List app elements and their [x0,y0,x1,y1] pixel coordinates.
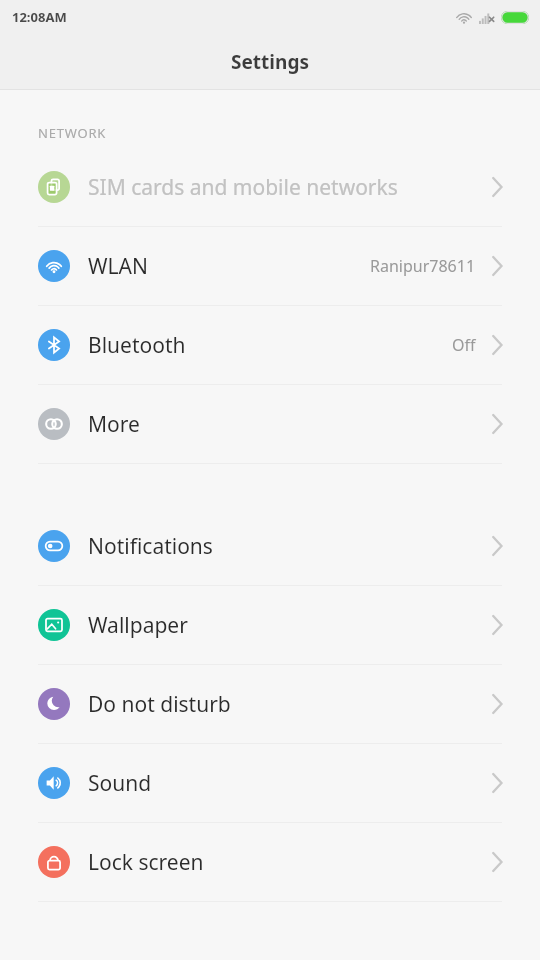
button[interactable]: Notifications [0,507,540,585]
staticText: Bluetooth [88,331,186,360]
staticText: Sound [88,769,152,798]
button[interactable]: Bluetooth [0,306,540,384]
staticText: More [88,410,140,439]
button[interactable]: Do not disturb [0,665,540,743]
staticText: Ranipur78611 [370,255,476,277]
staticText: Settings [231,49,309,75]
staticText: Off [452,334,476,356]
staticText: Notifications [88,532,213,561]
staticText: SIM cards and mobile networks [88,173,398,202]
button[interactable]: Wallpaper [0,586,540,664]
staticText: 12:08AM [12,8,67,26]
staticText: WLAN [88,252,148,281]
staticText: NETWORK [38,124,107,142]
button[interactable]: Sound [0,744,540,822]
staticText: Do not disturb [88,690,231,719]
button[interactable]: WLAN [0,227,540,305]
button[interactable]: SIM cards and mobile networks [0,148,540,226]
staticText: Wallpaper [88,611,188,640]
button[interactable]: Lock screen [0,823,540,901]
staticText: Lock screen [88,848,204,877]
button[interactable]: More [0,385,540,463]
